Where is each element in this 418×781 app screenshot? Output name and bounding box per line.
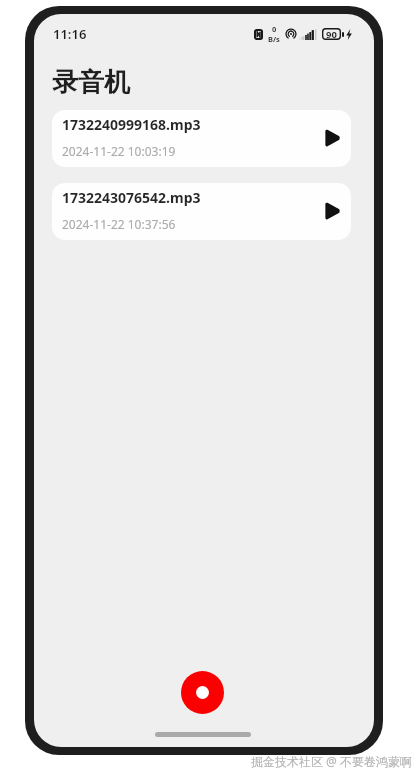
button[interactable]: Play: [320, 198, 346, 224]
button[interactable]: Play: [320, 125, 346, 151]
staticText: 1732243076542.mp3: [62, 188, 201, 207]
staticText: B/s: [268, 34, 280, 44]
button[interactable]: 1732243076542.mp3: [52, 183, 351, 240]
staticText: 2024-11-22 10:37:56: [62, 216, 176, 232]
staticText: 11:16: [53, 25, 87, 43]
button[interactable]: Record: [181, 671, 224, 714]
button[interactable]: 1732240999168.mp3: [52, 110, 351, 167]
staticText: 1732240999168.mp3: [62, 115, 201, 134]
staticText: 2024-11-22 10:03:19: [62, 143, 176, 159]
staticText: 90: [326, 28, 337, 40]
staticText: 掘金技术社区 @ 不要卷鸿蒙啊: [251, 753, 413, 769]
staticText: 0: [272, 24, 277, 34]
staticText: 录音机: [52, 66, 130, 99]
